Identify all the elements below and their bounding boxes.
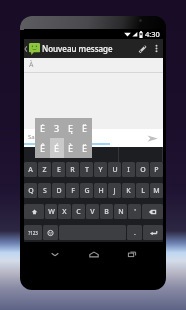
button[interactable]: B <box>100 204 113 219</box>
button[interactable]: W <box>45 204 57 219</box>
button[interactable]: More options <box>150 39 163 58</box>
staticText: W <box>48 207 55 217</box>
button[interactable]: É <box>50 138 64 158</box>
staticText: Ê <box>40 142 46 154</box>
staticText: V <box>90 207 95 217</box>
button[interactable] <box>143 225 163 240</box>
staticText: R <box>70 165 75 175</box>
button[interactable]: ?123 <box>24 225 42 240</box>
button[interactable]: F <box>66 183 79 198</box>
button[interactable]: U <box>108 162 121 177</box>
staticText: Nouveau message <box>42 43 113 54</box>
staticText: L <box>141 186 145 196</box>
button[interactable]: Hide keyboard <box>48 247 62 261</box>
button[interactable]: Send <box>145 131 159 145</box>
button[interactable] <box>43 225 58 240</box>
staticText: H <box>98 186 104 196</box>
staticText: Q <box>28 186 34 196</box>
button[interactable]: Ë <box>78 118 92 138</box>
staticText: Ë <box>82 142 88 154</box>
staticText: È <box>68 142 74 154</box>
button[interactable]: Ë <box>78 138 92 158</box>
staticText: B <box>104 207 109 217</box>
button[interactable]: J <box>108 183 121 198</box>
staticText: Ė <box>40 122 46 134</box>
button[interactable]: C <box>72 204 85 219</box>
button[interactable]: T <box>80 162 93 177</box>
button[interactable]: X <box>58 204 71 219</box>
staticText: M <box>153 186 160 196</box>
button[interactable]: Attach <box>133 39 150 58</box>
button[interactable] <box>24 204 44 219</box>
button[interactable]: Ę <box>64 118 78 138</box>
button[interactable]: R <box>66 162 79 177</box>
staticText: Saisissez un message <box>28 133 89 141</box>
staticText: U <box>112 165 118 175</box>
staticText: À <box>29 60 34 70</box>
button[interactable]: À <box>24 58 163 72</box>
button[interactable]: E <box>52 162 65 177</box>
staticText: C <box>76 207 81 217</box>
button[interactable]: Ė <box>35 118 50 138</box>
staticText: Ë <box>82 122 88 134</box>
staticText: J <box>113 186 116 196</box>
button[interactable]: 3 <box>50 118 64 138</box>
staticText: . <box>134 228 136 238</box>
staticText: Y <box>98 165 103 175</box>
button[interactable]: ' <box>128 204 141 219</box>
staticText: E <box>57 165 61 175</box>
staticText: S <box>43 186 47 196</box>
button[interactable]: P <box>150 162 163 177</box>
staticText: N <box>118 207 124 217</box>
button[interactable]: I <box>122 162 135 177</box>
button[interactable]: Ê <box>35 138 50 158</box>
staticText: P <box>154 165 159 175</box>
button[interactable]: H <box>94 183 107 198</box>
staticText: ' <box>134 207 136 217</box>
button[interactable]: Z <box>38 162 51 177</box>
button[interactable]: D <box>52 183 65 198</box>
button[interactable]: S <box>38 183 51 198</box>
staticText: Ę <box>68 122 74 134</box>
button[interactable]: . <box>127 225 142 240</box>
button[interactable]: M <box>150 183 163 198</box>
button[interactable]: V <box>86 204 99 219</box>
staticText: O <box>140 165 146 175</box>
staticText: D <box>56 186 62 196</box>
button[interactable]: K <box>122 183 135 198</box>
staticText: A <box>28 165 33 175</box>
button[interactable]: A <box>24 162 37 177</box>
staticText: Z <box>42 165 47 175</box>
staticText: F <box>71 186 75 196</box>
staticText: I <box>127 165 130 175</box>
staticText: T <box>85 165 89 175</box>
button[interactable] <box>142 204 163 219</box>
staticText: ?123 <box>28 230 38 236</box>
button[interactable]: È <box>64 138 78 158</box>
staticText: X <box>62 207 67 217</box>
staticText: 4:30 <box>145 29 160 39</box>
button[interactable]: Navigate up <box>24 39 42 58</box>
button[interactable]: O <box>136 162 149 177</box>
button[interactable]: Q <box>24 183 37 198</box>
button[interactable]: Home <box>87 247 101 261</box>
button[interactable]: G <box>80 183 93 198</box>
staticText: 3 <box>54 122 60 134</box>
staticText: É <box>54 142 60 154</box>
button[interactable]: L <box>136 183 149 198</box>
button[interactable]: Recent apps <box>125 247 139 261</box>
button[interactable]: N <box>114 204 127 219</box>
staticText: K <box>126 186 131 196</box>
staticText: G <box>84 186 90 196</box>
button[interactable]: Y <box>94 162 107 177</box>
